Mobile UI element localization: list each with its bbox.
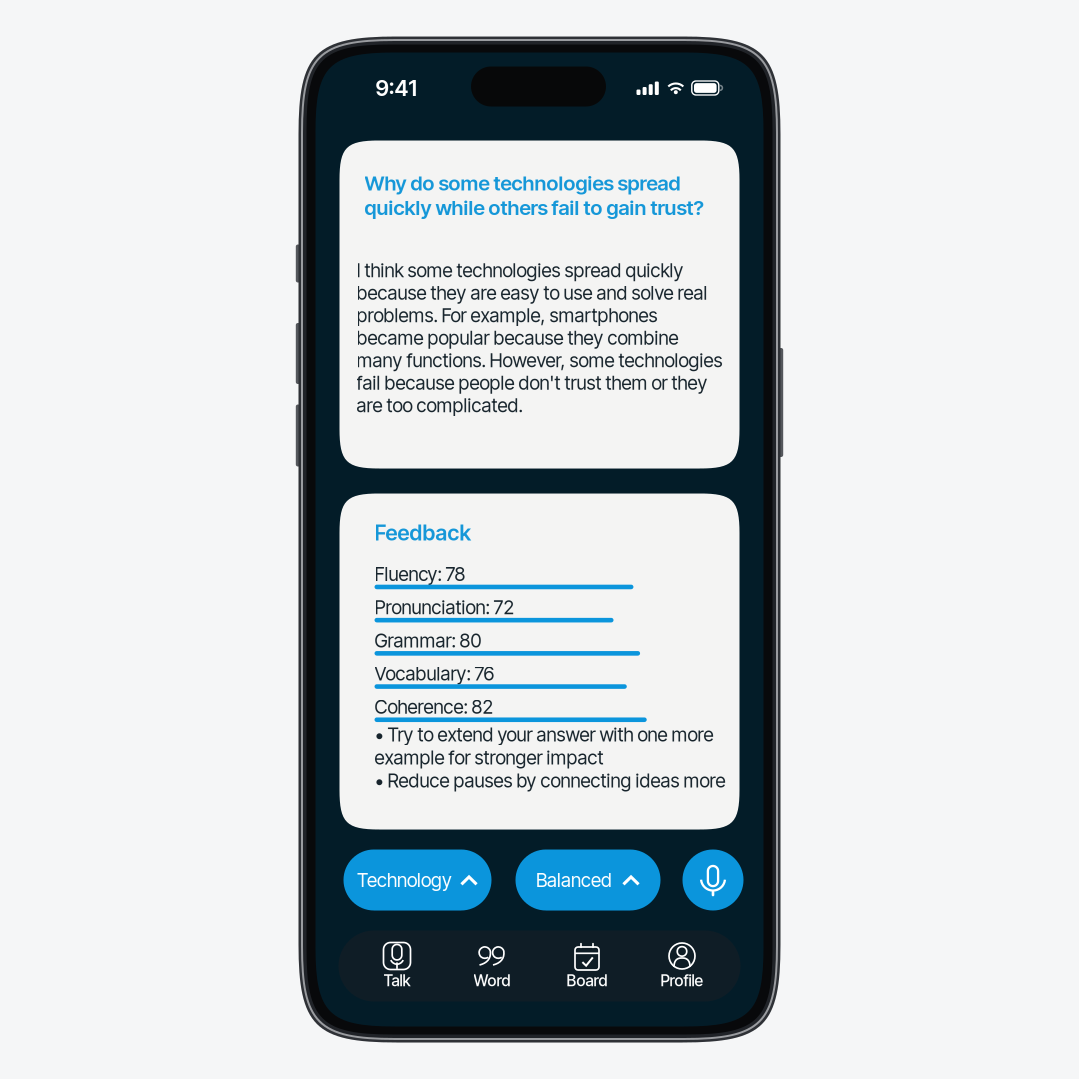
staticText: Coherence: 82: [374, 695, 493, 718]
staticText: Grammar: 80: [374, 629, 481, 652]
staticText: Board: [566, 971, 607, 990]
staticText: Word: [473, 971, 510, 990]
staticText: Vocabulary: 76: [374, 662, 494, 685]
staticText: Why do some technologies spread quickly …: [364, 170, 703, 220]
staticText: • Try to extend your answer with one mor…: [374, 723, 713, 769]
staticText: Profile: [660, 971, 703, 990]
button[interactable]: Balanced: [515, 849, 660, 910]
staticText: Feedback: [374, 519, 470, 546]
button[interactable]: Board: [539, 933, 634, 999]
staticText: Fluency: 78: [374, 563, 465, 585]
staticText: I think some technologies spread quickly…: [356, 259, 722, 417]
button[interactable]: Profile: [634, 933, 729, 999]
staticText: Technology: [357, 868, 452, 891]
staticText: Talk: [383, 971, 410, 990]
staticText: • Reduce pauses by connecting ideas more: [374, 769, 725, 792]
staticText: 9:41: [375, 75, 416, 101]
button[interactable]: Talk: [349, 933, 444, 999]
button[interactable]: Word: [444, 933, 539, 999]
button[interactable]: Record: [682, 849, 743, 910]
button[interactable]: Technology: [343, 849, 491, 910]
staticText: Balanced: [536, 868, 612, 891]
staticText: Pronunciation: 72: [374, 596, 514, 619]
